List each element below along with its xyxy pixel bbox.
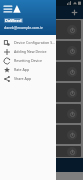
button[interactable]: Rate App bbox=[0, 65, 56, 74]
button[interactable] bbox=[2, 41, 81, 60]
staticText: Device Configuration Settings bbox=[14, 40, 56, 45]
button[interactable]: Device Configuration Settings bbox=[0, 38, 56, 47]
button[interactable]: Resetting Device bbox=[0, 56, 56, 65]
staticText: DaWeed bbox=[5, 18, 22, 23]
button[interactable]: Share App bbox=[0, 74, 56, 83]
staticText: Share App bbox=[14, 76, 32, 81]
button[interactable] bbox=[2, 146, 81, 157]
staticText: Adding New Device bbox=[14, 49, 47, 54]
button[interactable]: Adding New Device bbox=[0, 47, 56, 56]
button[interactable] bbox=[2, 104, 81, 123]
button[interactable] bbox=[2, 62, 81, 81]
staticText: Resetting Device bbox=[14, 58, 42, 63]
button[interactable]: Add device bbox=[69, 7, 80, 18]
staticText: daveb@example.com.tr bbox=[4, 25, 43, 30]
button[interactable] bbox=[2, 125, 81, 144]
staticText: Rate App bbox=[14, 67, 30, 72]
button[interactable] bbox=[2, 83, 81, 102]
button[interactable] bbox=[2, 20, 81, 39]
